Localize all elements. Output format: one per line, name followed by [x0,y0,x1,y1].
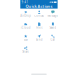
button[interactable]: Contact [33,10,45,19]
staticText: Star [24,38,28,41]
staticText: Share [22,50,29,53]
button[interactable]: Call [47,34,59,43]
staticText: AirDrop [20,14,31,17]
staticText: Send [36,38,43,41]
button[interactable]: AirDrop [20,10,31,19]
button[interactable]: Star [20,34,31,43]
button[interactable]: Share [20,46,31,55]
staticText: Saved [49,26,56,29]
staticText: Quick Actions [25,3,52,9]
button[interactable]: iCloud [20,22,31,31]
staticText: 9:41 [21,0,28,4]
staticText: iCloud [21,26,31,29]
button[interactable]: Saved [47,22,59,31]
staticText: Message [47,14,58,17]
staticText: Contact [34,14,44,17]
staticText: Files [36,26,42,29]
staticText: Call [50,38,55,41]
button[interactable]: Send [33,34,45,43]
button[interactable]: Message [47,10,59,19]
button[interactable]: Files [33,22,45,31]
